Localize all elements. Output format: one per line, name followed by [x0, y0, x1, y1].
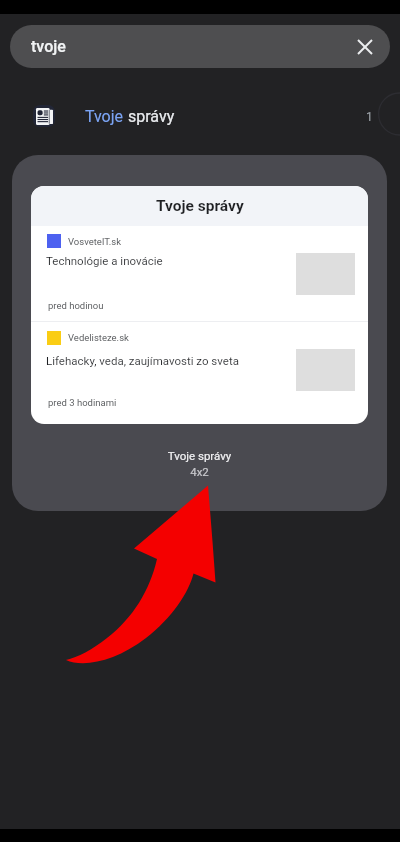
staticText: pred hodinou: [48, 300, 104, 311]
staticText: 1: [366, 110, 373, 124]
staticText: správy: [124, 107, 175, 126]
button[interactable]: Tvoje správy: [12, 155, 387, 511]
staticText: Tvoje správy: [12, 449, 387, 462]
staticText: 4x2: [12, 465, 387, 478]
staticText: Tvoje správy: [156, 197, 244, 215]
button[interactable]: tvoje: [10, 25, 390, 68]
button[interactable]: Vymazať: [348, 30, 382, 64]
button[interactable]: VosvetelT.sk: [31, 226, 368, 321]
staticText: Vedelisteze.sk: [68, 332, 129, 343]
staticText: Tvoje: [85, 107, 124, 126]
staticText: pred 3 hodinami: [48, 397, 117, 408]
staticText: VosvetelT.sk: [68, 236, 122, 247]
button[interactable]: Vedelisteze.sk: [31, 322, 368, 424]
button[interactable]: Tvoje: [0, 94, 400, 139]
staticText: Technológie a inovácie: [46, 254, 163, 267]
staticText: tvoje: [31, 37, 66, 56]
other: Rozbaliť: [370, 88, 400, 118]
staticText: Lifehacky, veda, zaujímavosti zo sveta: [46, 354, 239, 367]
